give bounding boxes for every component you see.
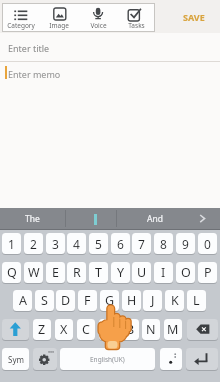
staticText: Sym [8, 354, 24, 365]
staticText: T [95, 264, 102, 281]
button[interactable]: 6 [111, 233, 130, 254]
staticText: W [28, 264, 40, 281]
staticText: 9 [182, 236, 189, 252]
button[interactable]: E [46, 262, 65, 283]
staticText: J [151, 292, 155, 309]
staticText: 0 [204, 236, 211, 252]
button[interactable]: Z [33, 319, 51, 340]
button[interactable] [2, 319, 29, 340]
button[interactable]: S [35, 290, 54, 311]
staticText: O [181, 264, 191, 281]
staticText: B [126, 321, 135, 338]
staticText: The [25, 213, 40, 225]
button[interactable]: Sym [2, 348, 29, 370]
button[interactable]: 5 [89, 233, 108, 254]
staticText: 6 [117, 236, 124, 252]
button[interactable]: 4 [67, 233, 86, 254]
button[interactable]: 7 [132, 233, 151, 254]
staticText: S [41, 292, 48, 309]
staticText: G [105, 292, 115, 309]
button[interactable]: Y [111, 262, 130, 283]
button[interactable]: SAVE [173, 5, 214, 29]
button[interactable]: H [122, 290, 141, 311]
button[interactable]: And [117, 208, 192, 229]
button[interactable]: L [187, 290, 206, 311]
button[interactable]: G [100, 290, 119, 311]
button[interactable] [33, 348, 57, 370]
staticText: U [137, 264, 147, 281]
button[interactable]: B [121, 319, 139, 340]
button[interactable]: J [143, 290, 162, 311]
staticText: A [19, 292, 27, 309]
button[interactable]: Q [2, 262, 21, 283]
staticText: Category [7, 21, 35, 30]
button[interactable]: K [165, 290, 184, 311]
button[interactable] [186, 348, 218, 370]
button[interactable]: D [56, 290, 75, 311]
button[interactable] [187, 319, 218, 340]
staticText: F [84, 292, 91, 309]
staticText: P [204, 264, 212, 281]
staticText: N [146, 321, 156, 338]
staticText: Image [49, 21, 69, 30]
button[interactable]: The [0, 208, 64, 229]
staticText: Z [38, 321, 46, 338]
button[interactable]: V [99, 319, 117, 340]
staticText: Y [117, 264, 125, 281]
staticText: L [193, 292, 200, 309]
staticText: English(UK) [90, 355, 125, 364]
staticText: 3 [52, 236, 59, 252]
staticText: R [73, 264, 81, 281]
staticText: 8 [160, 236, 167, 252]
staticText: X [60, 321, 68, 338]
staticText: And [147, 213, 163, 225]
staticText: C [82, 321, 90, 338]
button[interactable]: 1 [2, 233, 21, 254]
button[interactable]: P [198, 262, 217, 283]
button[interactable]: 9 [176, 233, 195, 254]
button[interactable]: English(UK) [60, 348, 155, 370]
staticText: SAVE [183, 11, 205, 23]
button[interactable]: 2 [24, 233, 43, 254]
button[interactable]: 0 [198, 233, 217, 254]
staticText: K [171, 292, 179, 309]
staticText: Q [7, 264, 17, 281]
button[interactable]: I [154, 262, 173, 283]
button[interactable] [117, 3, 155, 32]
button[interactable]: T [89, 262, 108, 283]
staticText: 7 [138, 236, 145, 252]
button[interactable]: Enter memo [0, 62, 220, 208]
button[interactable]: R [67, 262, 86, 283]
staticText: Enter memo [8, 68, 61, 80]
staticText: Tasks [128, 21, 145, 30]
button[interactable]: U [132, 262, 151, 283]
staticText: M [167, 321, 179, 338]
button[interactable]: A [13, 290, 32, 311]
button[interactable]: Enter title [0, 33, 220, 62]
button[interactable]: 8 [154, 233, 173, 254]
button[interactable] [160, 348, 182, 370]
button[interactable]: W [24, 262, 43, 283]
button[interactable]: C [77, 319, 95, 340]
staticText: I [161, 264, 166, 281]
button[interactable]: X [55, 319, 73, 340]
button[interactable] [79, 3, 117, 32]
staticText: H [127, 292, 137, 309]
staticText: E [52, 264, 59, 281]
button[interactable]: F [78, 290, 97, 311]
button[interactable]: M [164, 319, 182, 340]
button[interactable] [2, 3, 40, 32]
staticText: 4 [73, 236, 80, 252]
staticText: Voice [90, 21, 107, 30]
staticText: 1 [8, 236, 15, 252]
button[interactable]: N [142, 319, 160, 340]
staticText: 2 [30, 236, 37, 252]
staticText: Enter title [8, 42, 50, 54]
staticText: D [61, 292, 71, 309]
button[interactable] [40, 3, 78, 32]
button[interactable] [190, 208, 220, 229]
button[interactable]: O [176, 262, 195, 283]
button[interactable]: 3 [46, 233, 65, 254]
staticText: 5 [95, 236, 102, 252]
